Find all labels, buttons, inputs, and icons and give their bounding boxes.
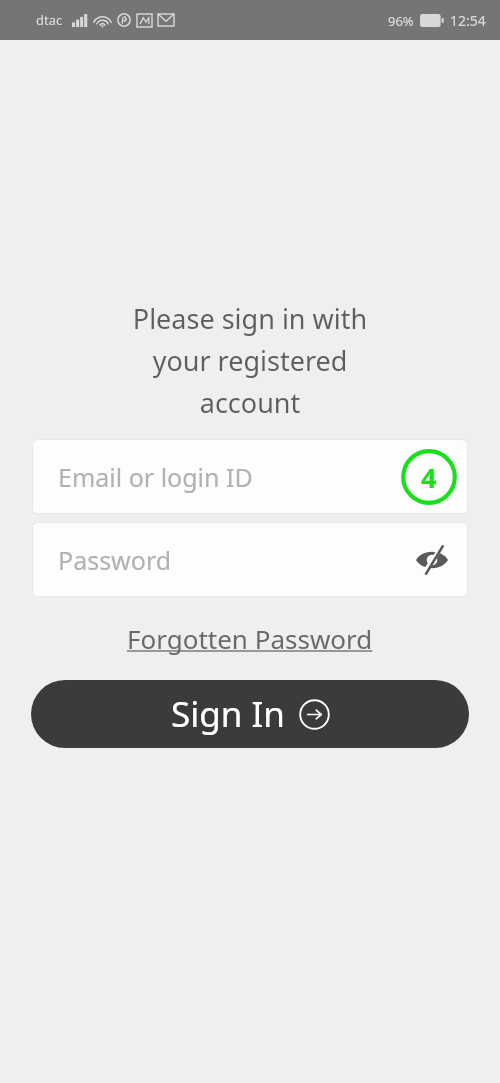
staticText: Forgotten Password bbox=[127, 621, 373, 656]
staticText: Sign In bbox=[171, 690, 285, 738]
staticText: dtac bbox=[36, 11, 63, 29]
staticText: 96% bbox=[388, 12, 414, 30]
staticText: Please sign in with your registered acco… bbox=[0, 300, 500, 421]
button[interactable]: Email or login ID bbox=[32, 439, 468, 514]
staticText: Password bbox=[58, 543, 172, 577]
staticText: Email or login ID bbox=[58, 460, 253, 494]
button[interactable]: Password bbox=[32, 522, 468, 597]
button[interactable]: Sign In bbox=[31, 680, 469, 748]
staticText: 4 bbox=[421, 459, 437, 496]
button[interactable]: 4 notifications bbox=[398, 446, 460, 508]
button[interactable]: Show password bbox=[404, 532, 460, 588]
button[interactable]: Forgotten Password bbox=[121, 617, 379, 660]
staticText: 12:54 bbox=[450, 11, 486, 30]
